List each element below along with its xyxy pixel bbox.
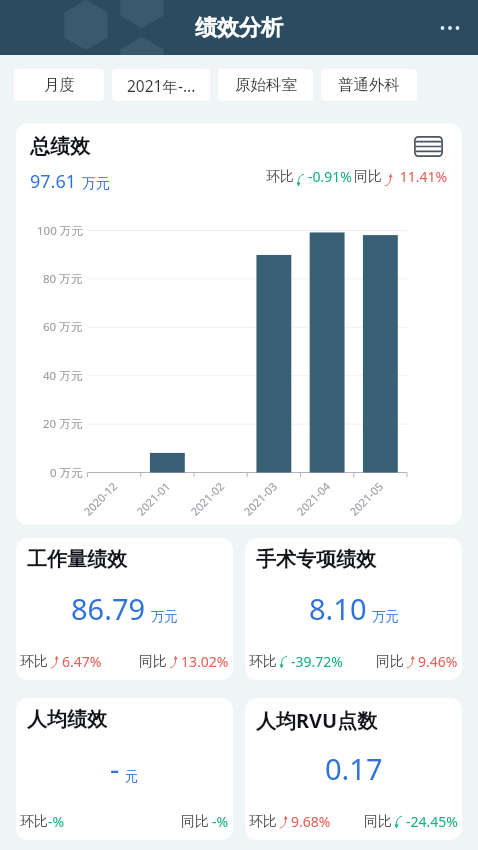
staticText: 月度 xyxy=(44,75,75,95)
staticText: 2021年-... xyxy=(127,75,196,96)
button[interactable]: 月度 xyxy=(14,69,104,101)
staticText: 9.68% xyxy=(291,812,331,831)
staticText: 86.79 xyxy=(71,589,146,628)
staticText: 人均绩效 xyxy=(27,707,107,732)
staticText: 11.41% xyxy=(396,167,448,186)
staticText: 2021-04 xyxy=(293,478,333,518)
staticText: 环比 xyxy=(20,653,48,671)
staticText: 人均RVU点数 xyxy=(256,707,378,734)
staticText: - xyxy=(110,749,120,788)
staticText: 8.10 xyxy=(309,589,367,628)
staticText: 9.46% xyxy=(418,652,458,671)
staticText: -% xyxy=(48,812,65,831)
staticText: 0 万元 xyxy=(50,465,83,481)
staticText: 同比 xyxy=(364,813,392,831)
staticText: 万元 xyxy=(372,608,399,625)
staticText: 环比 xyxy=(249,653,277,671)
staticText: -39.72% xyxy=(291,652,343,671)
staticText: 环比 xyxy=(249,813,277,831)
staticText: 环比 xyxy=(20,813,48,831)
staticText: 13.02% xyxy=(181,652,229,671)
staticText: 手术专项绩效 xyxy=(256,547,376,572)
staticText: 同比 xyxy=(181,813,209,831)
button[interactable]: 人均RVU点数 xyxy=(245,698,462,840)
staticText: 原始科室 xyxy=(235,75,297,95)
staticText: 普通外科 xyxy=(338,75,400,95)
staticText: 80 万元 xyxy=(43,271,83,287)
button[interactable]: 普通外科 xyxy=(321,69,417,101)
staticText: 20 万元 xyxy=(43,416,83,432)
button[interactable]: 手术专项绩效 xyxy=(245,538,462,680)
button[interactable]: 2021年-... xyxy=(112,69,210,101)
staticText: 同比 xyxy=(139,653,167,671)
staticText: 万元 xyxy=(82,175,110,193)
staticText: 40 万元 xyxy=(43,368,83,384)
staticText: 同比 xyxy=(354,168,382,186)
staticText: 环比 xyxy=(266,168,294,186)
staticText: 同比 xyxy=(376,653,404,671)
button[interactable]: 人均绩效 xyxy=(16,698,233,840)
staticText: -24.45% xyxy=(406,812,458,831)
button[interactable]: Table view xyxy=(412,132,444,160)
staticText: 2021-05 xyxy=(346,478,386,518)
staticText: 绩效分析 xyxy=(195,14,283,42)
button[interactable]: 原始科室 xyxy=(218,69,313,101)
staticText: 2021-02 xyxy=(187,478,227,518)
staticText: 100 万元 xyxy=(37,223,83,239)
staticText: 总绩效 xyxy=(30,134,90,159)
staticText: 97.61 xyxy=(30,169,77,194)
staticText: 元 xyxy=(125,768,139,785)
staticText: -% xyxy=(212,812,229,831)
staticText: -0.91% xyxy=(308,167,352,186)
staticText: 工作量绩效 xyxy=(27,547,127,572)
staticText: 60 万元 xyxy=(43,319,83,335)
staticText: 2020-12 xyxy=(80,478,120,518)
staticText: 万元 xyxy=(151,608,178,625)
staticText: 6.47% xyxy=(62,652,102,671)
staticText: 0.17 xyxy=(325,749,383,788)
staticText: 2021-03 xyxy=(240,478,280,518)
button[interactable]: 工作量绩效 xyxy=(16,538,233,680)
button[interactable]: More options xyxy=(432,10,468,46)
staticText: 2021-01 xyxy=(133,478,173,518)
